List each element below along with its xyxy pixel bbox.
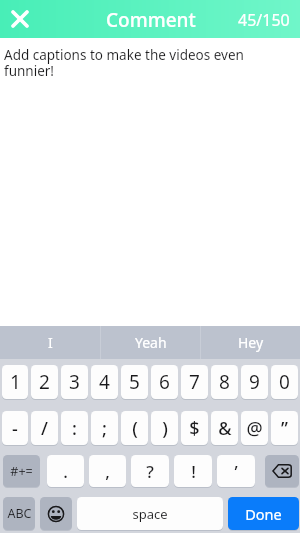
staticText: Hey [238, 333, 264, 352]
button[interactable]: ’ [217, 455, 255, 487]
staticText: $ [189, 416, 200, 441]
button[interactable]: $ [181, 411, 208, 445]
button[interactable]: 6 [151, 365, 178, 399]
staticText: ) [162, 416, 168, 441]
staticText: ; [102, 416, 107, 441]
staticText: 0 [279, 369, 290, 395]
button[interactable]: ) [151, 411, 178, 445]
button[interactable]: I [0, 326, 100, 359]
button[interactable]: : [61, 411, 88, 445]
button[interactable]: ABC [3, 497, 35, 530]
staticText: ! [191, 460, 196, 483]
staticText: 8 [219, 369, 230, 395]
staticText: & [218, 416, 232, 441]
button[interactable]: Yeah [101, 326, 200, 359]
button[interactable]: Hey [201, 326, 300, 359]
staticText: - [12, 416, 18, 441]
staticText: 45/150 [238, 9, 290, 31]
staticText: 4 [99, 369, 110, 395]
button[interactable]: 4 [91, 365, 118, 399]
button[interactable]: Emoji keyboard [40, 497, 72, 530]
staticText: 6 [159, 369, 170, 395]
button[interactable]: & [211, 411, 238, 445]
staticText: Comment [106, 7, 196, 33]
staticText: Done [245, 504, 282, 524]
staticText: . [63, 460, 68, 483]
button[interactable]: 9 [241, 365, 268, 399]
button[interactable]: / [31, 411, 58, 445]
staticText: , [105, 460, 110, 483]
button[interactable]: 8 [211, 365, 238, 399]
button[interactable]: , [89, 455, 126, 487]
staticText: space [132, 505, 168, 523]
staticText: ? [146, 460, 154, 483]
button[interactable]: 2 [31, 365, 58, 399]
button[interactable]: ” [271, 411, 298, 445]
button[interactable]: 7 [181, 365, 208, 399]
staticText: ( [132, 416, 138, 441]
button[interactable]: ; [91, 411, 118, 445]
button[interactable]: ! [174, 455, 212, 487]
button[interactable]: 3 [61, 365, 88, 399]
staticText: 5 [129, 369, 140, 395]
staticText: 2 [39, 369, 50, 395]
button[interactable]: 5 [121, 365, 148, 399]
staticText: ” [281, 416, 288, 441]
button[interactable]: ( [121, 411, 148, 445]
staticText: Add captions to make the videos even fun… [4, 46, 262, 80]
button[interactable]: . [47, 455, 84, 487]
staticText: 9 [249, 369, 260, 395]
button[interactable]: ? [131, 455, 169, 487]
staticText: #+= [10, 463, 33, 480]
staticText: @ [246, 416, 263, 441]
button[interactable]: space [77, 497, 223, 530]
staticText: 7 [189, 369, 200, 395]
staticText: ABC [7, 505, 32, 522]
button[interactable]: 0 [271, 365, 298, 399]
button[interactable]: - [2, 411, 28, 445]
button[interactable]: @ [241, 411, 268, 445]
staticText: ’ [234, 460, 238, 483]
staticText: : [72, 416, 77, 441]
button[interactable]: 1 [2, 365, 28, 399]
button[interactable]: Backspace [265, 455, 299, 487]
button[interactable]: Done [228, 497, 299, 530]
staticText: / [41, 416, 48, 441]
button[interactable]: #+= [3, 455, 40, 487]
staticText: I [48, 333, 53, 352]
staticText: 3 [69, 369, 80, 395]
button[interactable]: Close [0, 0, 40, 38]
staticText: 1 [10, 369, 21, 395]
staticText: Yeah [135, 333, 167, 352]
